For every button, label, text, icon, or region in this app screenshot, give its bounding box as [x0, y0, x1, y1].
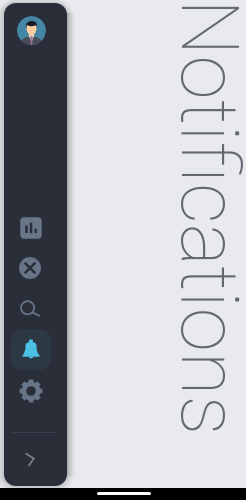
button[interactable]: Notifications [11, 329, 51, 370]
button[interactable]: Notifications [14, 333, 48, 367]
button[interactable]: Dashboard [14, 211, 48, 245]
button[interactable]: Profile [17, 16, 46, 45]
button[interactable]: Expand menu [13, 443, 47, 477]
button[interactable]: Settings [14, 374, 48, 408]
button[interactable]: Search [14, 292, 48, 326]
button[interactable]: Close [13, 251, 47, 285]
